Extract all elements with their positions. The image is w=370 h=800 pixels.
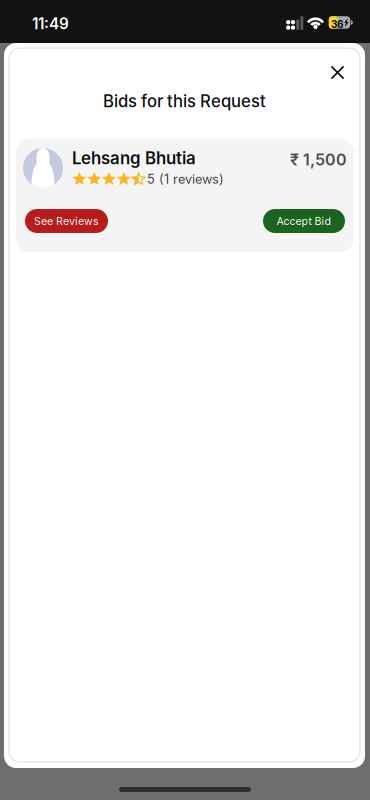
staticText: 36 bbox=[331, 18, 343, 30]
staticText: 5 (1 reviews) bbox=[147, 171, 224, 187]
staticText: Accept Bid bbox=[276, 214, 331, 227]
button[interactable]: Accept Bid bbox=[263, 209, 345, 233]
staticText: ₹ 1,500 bbox=[290, 150, 347, 169]
button[interactable]: Close bbox=[322, 57, 352, 87]
staticText: See Reviews bbox=[34, 214, 99, 227]
staticText: Lehsang Bhutia bbox=[72, 148, 196, 168]
staticText: Bids for this Request bbox=[103, 91, 266, 111]
staticText: 11:49 bbox=[32, 14, 69, 33]
button[interactable]: See Reviews bbox=[25, 209, 108, 233]
